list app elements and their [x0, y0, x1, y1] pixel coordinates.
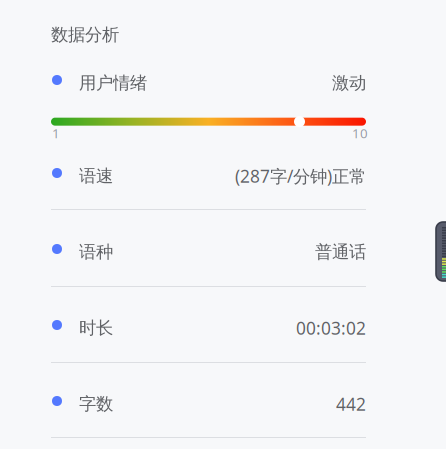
staticText: 00:03:02: [296, 316, 366, 339]
staticText: 时长: [79, 317, 113, 339]
button[interactable]: 语速: [51, 164, 366, 188]
staticText: 数据分析: [51, 24, 119, 45]
staticText: 1: [52, 124, 60, 142]
button[interactable]: 语种: [51, 240, 366, 264]
button[interactable]: 录音音量: [436, 222, 446, 281]
staticText: 语速: [79, 165, 113, 187]
staticText: 激动: [332, 72, 366, 94]
button[interactable]: 时长: [51, 316, 366, 340]
staticText: 442: [336, 392, 366, 415]
staticText: (287字/分钟)正常: [235, 164, 366, 187]
staticText: 10: [352, 124, 368, 142]
button[interactable]: 字数: [51, 392, 366, 416]
staticText: 普通话: [315, 241, 366, 263]
staticText: 用户情绪: [79, 72, 147, 94]
staticText: 语种: [79, 241, 113, 263]
button[interactable]: 用户情绪: [51, 71, 366, 137]
staticText: 字数: [79, 393, 113, 415]
